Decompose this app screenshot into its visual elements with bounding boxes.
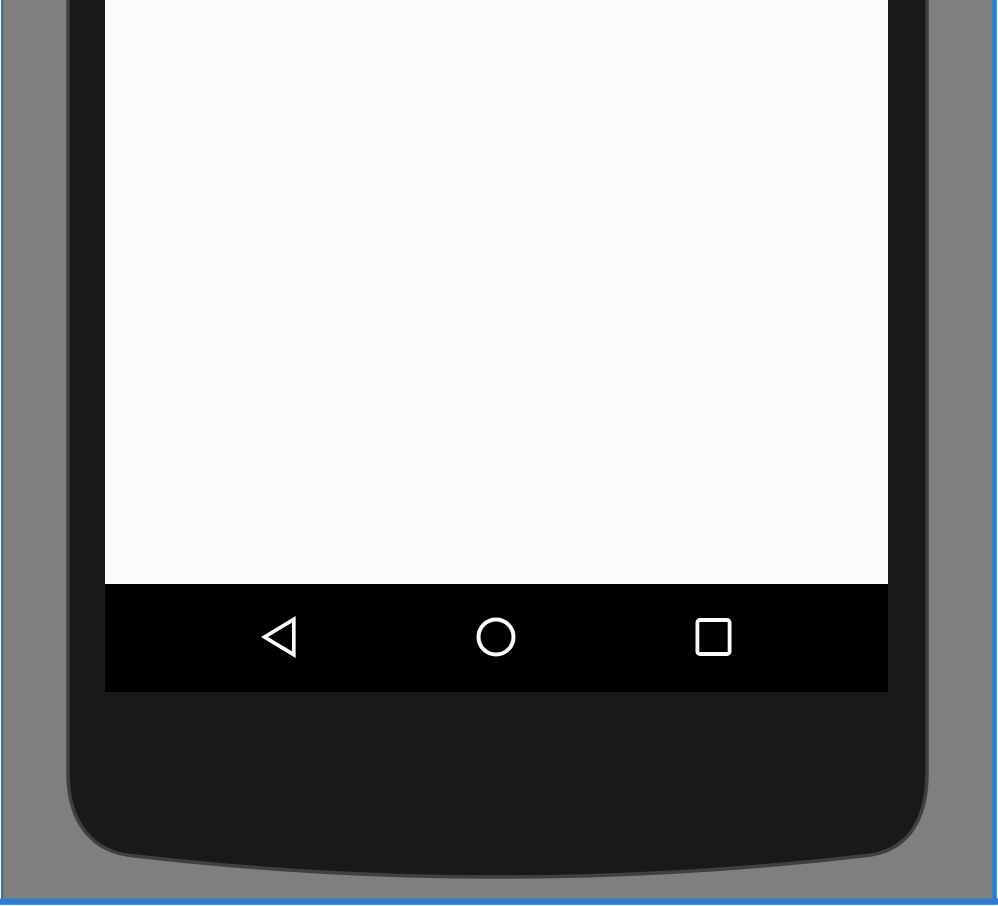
button[interactable] [177, 592, 377, 684]
button[interactable] [613, 592, 813, 684]
button[interactable] [396, 592, 596, 684]
